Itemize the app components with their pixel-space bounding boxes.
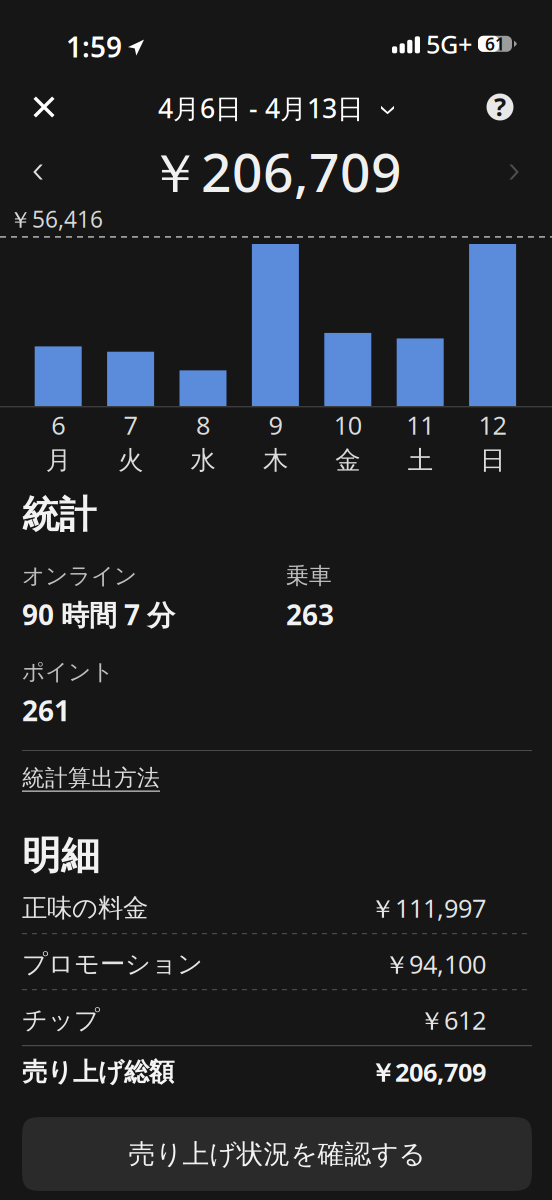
staticText: 日 (480, 445, 505, 476)
staticText: 土 (408, 445, 433, 476)
staticText: 263 (286, 596, 334, 633)
staticText: 月 (46, 445, 71, 476)
staticText: 乗車 (286, 562, 332, 590)
button[interactable]: 次の週 (490, 148, 538, 196)
button[interactable]: 統計算出方法 (22, 758, 160, 798)
staticText: 金 (335, 445, 360, 476)
staticText: 正味の料金 (22, 892, 148, 923)
staticText: 4月6日 - 4月13日 (158, 90, 364, 126)
staticText: 1:59 (66, 28, 122, 65)
button[interactable]: 前の週 (14, 148, 62, 196)
staticText: ￥56,416 (9, 204, 103, 234)
button[interactable]: 閉じる (15, 81, 73, 133)
staticText: チップ (22, 1004, 100, 1035)
staticText: 売り上げ総額 (22, 1056, 174, 1087)
staticText: 売り上げ状況を確認する (128, 1138, 425, 1170)
staticText: ポイント (22, 658, 114, 686)
staticText: ? (494, 90, 506, 123)
staticText: オンライン (22, 562, 137, 590)
staticText: プロモーション (22, 948, 203, 979)
staticText: 統計 (22, 492, 96, 538)
staticText: ￥111,997 (370, 891, 486, 925)
staticText: 12 (479, 408, 507, 442)
staticText: 統計算出方法 (22, 764, 160, 792)
staticText: 11 (406, 408, 434, 442)
staticText: 明細 (22, 832, 100, 879)
staticText: 61 (485, 32, 505, 55)
staticText: ￥206,709 (148, 136, 402, 207)
staticText: 9 (268, 408, 282, 442)
staticText: ￥206,709 (370, 1055, 486, 1089)
staticText: 10 (334, 408, 362, 442)
button[interactable]: 売り上げ状況を確認する (22, 1117, 532, 1191)
staticText: 6 (51, 408, 65, 442)
staticText: ￥94,100 (384, 947, 486, 981)
button[interactable]: 4月6日 - 4月13日 (158, 90, 394, 126)
staticText: 90 時間 7 分 (22, 596, 175, 633)
staticText: 水 (190, 445, 215, 476)
staticText: 7 (124, 408, 138, 442)
staticText: 8 (196, 408, 210, 442)
staticText: 火 (118, 445, 143, 476)
staticText: 261 (22, 692, 70, 729)
staticText: ￥612 (419, 1003, 486, 1037)
staticText: 木 (263, 445, 288, 476)
button[interactable]: ヘルプ (472, 81, 528, 133)
staticText: 5G+ (426, 27, 472, 61)
